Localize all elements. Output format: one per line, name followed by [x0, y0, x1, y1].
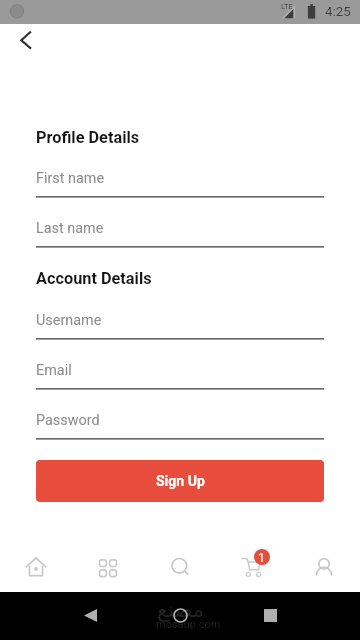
button[interactable]: Sign Up — [36, 460, 324, 502]
button[interactable]: Back — [74, 599, 106, 631]
button[interactable]: Search — [144, 540, 216, 592]
staticText: Sign Up — [156, 473, 205, 489]
staticText: Account Details — [36, 269, 152, 288]
button[interactable]: First name — [36, 166, 324, 197]
button[interactable]: Home — [0, 540, 72, 592]
button[interactable]: Profile — [288, 540, 360, 592]
button[interactable]: Email — [36, 358, 324, 389]
button[interactable]: Recents — [254, 599, 286, 631]
staticText: 4:25 — [325, 4, 351, 20]
button[interactable]: Password — [36, 408, 324, 439]
button[interactable]: Back — [4, 16, 48, 60]
staticText: مصنع — [157, 598, 204, 622]
staticText: First name — [36, 170, 105, 187]
button[interactable]: Username — [36, 308, 324, 339]
staticText: Password — [36, 412, 100, 429]
staticText: LTE — [281, 2, 293, 11]
staticText: mosaup.com — [156, 618, 221, 631]
staticText: 1 — [258, 550, 266, 565]
button[interactable]: Categories — [72, 540, 144, 592]
button[interactable]: Home — [164, 599, 196, 631]
staticText: Email — [36, 362, 72, 379]
staticText: Profile Details — [36, 128, 140, 147]
staticText: Username — [36, 312, 102, 329]
button[interactable]: Last name — [36, 216, 324, 247]
button[interactable]: Cart, 1 item — [216, 540, 288, 592]
staticText: Last name — [36, 220, 104, 237]
